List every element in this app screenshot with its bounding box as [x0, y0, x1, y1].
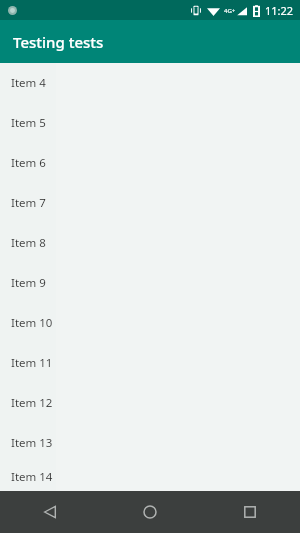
button[interactable]: Item 5: [0, 103, 300, 143]
staticText: Item 14: [11, 469, 53, 485]
button[interactable]: Item 12: [0, 383, 300, 423]
staticText: Item 6: [11, 155, 46, 171]
staticText: 4G+: [224, 7, 236, 15]
button[interactable]: Recents: [200, 491, 300, 533]
button[interactable]: Item 13: [0, 423, 300, 463]
staticText: Item 13: [11, 435, 53, 451]
staticText: Item 5: [11, 115, 46, 131]
button[interactable]: Item 8: [0, 223, 300, 263]
staticText: Item 12: [11, 395, 53, 411]
staticText: Item 9: [11, 275, 46, 291]
button[interactable]: Home: [100, 491, 200, 533]
staticText: Item 4: [11, 75, 46, 91]
button[interactable]: Item 11: [0, 343, 300, 383]
button[interactable]: Back: [0, 491, 100, 533]
staticText: Item 7: [11, 195, 46, 211]
staticText: Item 10: [11, 315, 53, 331]
staticText: Testing tests: [13, 32, 104, 52]
button[interactable]: Item 7: [0, 183, 300, 223]
staticText: 11:22: [265, 3, 294, 18]
button[interactable]: Item 10: [0, 303, 300, 343]
staticText: Item 8: [11, 235, 46, 251]
button[interactable]: Item 4: [0, 63, 300, 103]
button[interactable]: Item 14: [0, 463, 300, 491]
button[interactable]: Item 6: [0, 143, 300, 183]
button[interactable]: Item 9: [0, 263, 300, 303]
staticText: Item 11: [11, 355, 53, 371]
